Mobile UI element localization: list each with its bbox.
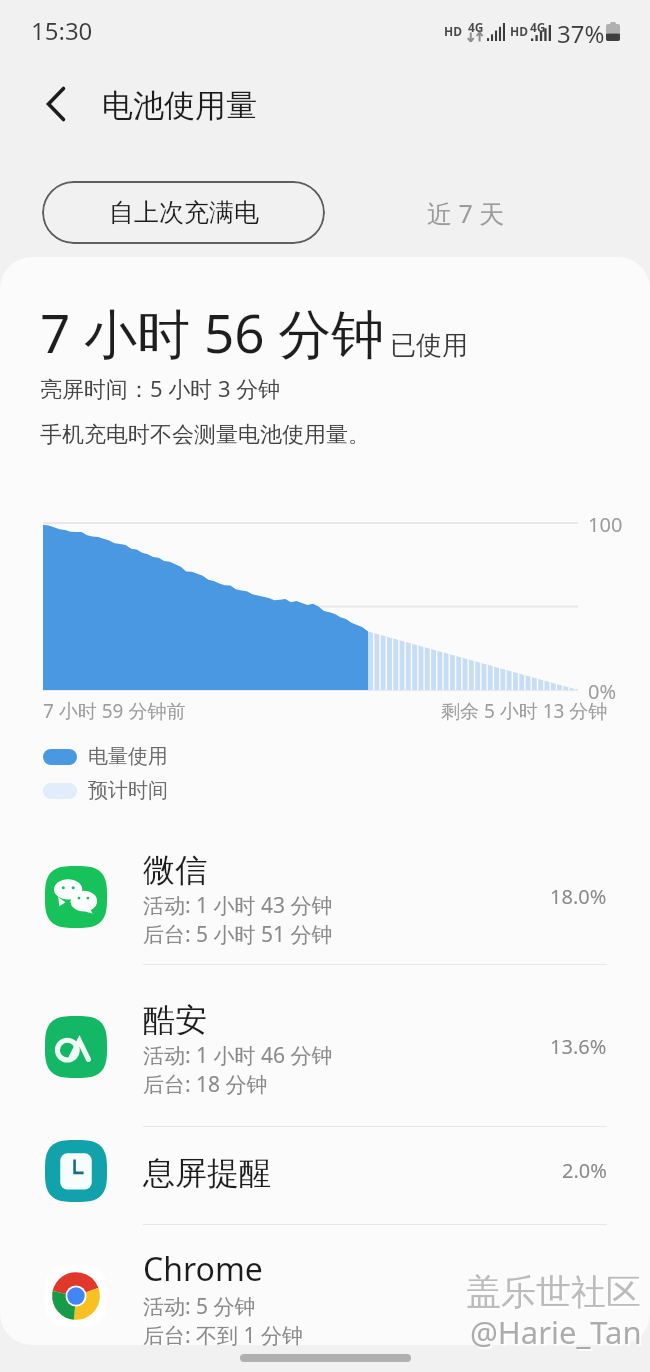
staticText: 盖乐世社区 <box>468 1272 643 1316</box>
staticText: 2.0% <box>562 1157 607 1184</box>
staticText: 活动: 1 小时 43 分钟 <box>143 891 333 920</box>
button[interactable]: 近 7 天 <box>366 181 566 244</box>
staticText: 电量使用 <box>88 744 168 769</box>
staticText: 活动: 1 小时 46 分钟 <box>143 1041 333 1070</box>
button[interactable]: 自上次充满电 <box>42 181 325 244</box>
staticText: @Harie_Tan <box>470 1311 642 1353</box>
staticText: 微信 <box>143 850 207 890</box>
staticText: 37% <box>557 17 605 50</box>
staticText: 酷安 <box>143 1000 207 1040</box>
staticText: 活动: 5 分钟 <box>143 1292 256 1321</box>
staticText: 手机充电时不会测量电池使用量。 <box>40 421 370 449</box>
staticText: 13.6% <box>550 1033 607 1060</box>
button[interactable]: Back <box>26 76 86 132</box>
staticText: 盖乐世社区 <box>466 1270 641 1314</box>
staticText: 已使用 <box>390 329 468 362</box>
button[interactable]: 酷安 <box>0 1002 650 1092</box>
staticText: 电池使用量 <box>102 86 257 125</box>
staticText: 息屏提醒 <box>143 1153 271 1193</box>
staticText: 后台: 不到 1 分钟 <box>143 1321 304 1350</box>
staticText: 亮屏时间：5 小时 3 分钟 <box>40 373 281 403</box>
staticText: 后台: 5 小时 51 分钟 <box>143 920 333 949</box>
staticText: HD <box>510 23 528 39</box>
staticText: 7 小时 56 分钟 <box>40 296 385 368</box>
staticText: 7 小时 59 分钟前 <box>43 698 186 724</box>
staticText: HD <box>444 23 462 39</box>
button[interactable]: Chrome <box>0 1251 650 1341</box>
staticText: Chrome <box>143 1247 263 1291</box>
staticText: 4G <box>530 19 546 35</box>
staticText: 18.0% <box>550 883 607 910</box>
staticText: 15:30 <box>31 14 93 47</box>
staticText: 4G <box>468 19 484 35</box>
staticText: 0% <box>588 678 617 705</box>
staticText: 自上次充满电 <box>109 197 259 228</box>
button[interactable]: 微信 <box>0 852 650 942</box>
staticText: 剩余 5 小时 13 分钟 <box>441 698 608 724</box>
staticText: 近 7 天 <box>427 196 505 230</box>
staticText: 预计时间 <box>88 778 168 803</box>
button[interactable]: 息屏提醒 <box>0 1140 650 1202</box>
staticText: @Harie_Tan <box>472 1313 644 1355</box>
staticText: 100 <box>588 511 623 538</box>
staticText: 后台: 18 分钟 <box>143 1070 268 1099</box>
